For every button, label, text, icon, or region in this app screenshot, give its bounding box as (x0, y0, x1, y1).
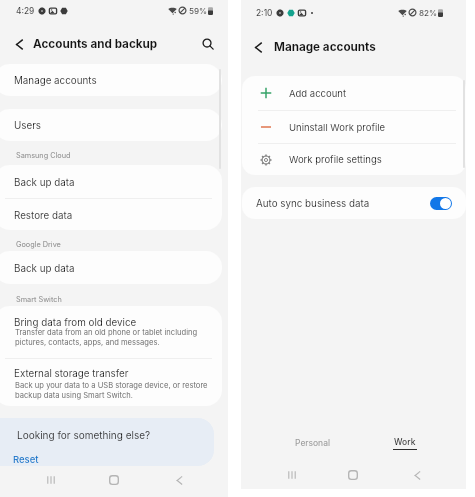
button[interactable]: Work profile settings (242, 144, 466, 175)
staticText: Back up data (14, 263, 75, 275)
button[interactable]: Uninstall Work profile (242, 111, 466, 143)
staticText: Manage accounts (274, 40, 376, 54)
staticText: 82% (419, 8, 438, 18)
button[interactable]: Reset (11, 453, 41, 466)
staticText: Google Drive (16, 240, 61, 249)
staticText: Auto sync business data (256, 198, 370, 210)
button[interactable]: Navigate up (247, 36, 269, 58)
button[interactable]: External storage transfer (0, 359, 222, 406)
staticText: Personal (295, 438, 330, 448)
button[interactable]: Back (407, 465, 427, 485)
button[interactable]: Search (196, 32, 220, 56)
button[interactable]: Recents (41, 470, 61, 490)
staticText: External storage transfer (14, 368, 129, 380)
staticText: 4:29 (16, 6, 35, 16)
button[interactable]: Work (375, 432, 435, 454)
button[interactable]: Add account (242, 76, 466, 110)
staticText: Samsung Cloud (16, 151, 71, 160)
button[interactable]: Auto sync business data (430, 197, 452, 210)
button[interactable]: Personal (277, 432, 347, 454)
staticText: Work (394, 437, 416, 447)
staticText: Uninstall Work profile (289, 122, 386, 133)
button[interactable]: Looking for something else? (0, 418, 214, 466)
staticText: Users (14, 120, 42, 132)
button[interactable]: Manage accounts (0, 64, 222, 96)
button[interactable]: Recents (282, 465, 302, 485)
button[interactable]: Home (104, 470, 124, 490)
staticText: Restore data (14, 210, 73, 222)
staticText: Back up data (14, 177, 75, 189)
staticText: Looking for something else? (17, 429, 151, 441)
button[interactable]: Back up data (0, 251, 222, 284)
button[interactable]: Home (343, 465, 363, 485)
staticText: Accounts and backup (33, 37, 158, 51)
button[interactable]: Back (169, 470, 189, 490)
staticText: Work profile settings (289, 154, 382, 165)
button[interactable]: Bring data from old device (0, 306, 222, 358)
staticText: Reset (13, 454, 39, 465)
staticText: 2:10 (256, 8, 273, 18)
button[interactable]: Navigate up (8, 33, 30, 55)
button[interactable]: Users (0, 109, 222, 141)
staticText: Bring data from old device (14, 317, 137, 329)
staticText: Back up your data to a USB storage devic… (15, 381, 213, 400)
staticText: Transfer data from an old phone or table… (15, 328, 213, 347)
staticText: Add account (289, 88, 347, 99)
staticText: Manage accounts (14, 75, 97, 87)
staticText: 59% (189, 6, 208, 16)
button[interactable]: Restore data (0, 199, 222, 230)
button[interactable]: Auto sync business data (242, 187, 466, 219)
staticText: Smart Switch (16, 295, 62, 304)
button[interactable]: Back up data (0, 165, 222, 198)
